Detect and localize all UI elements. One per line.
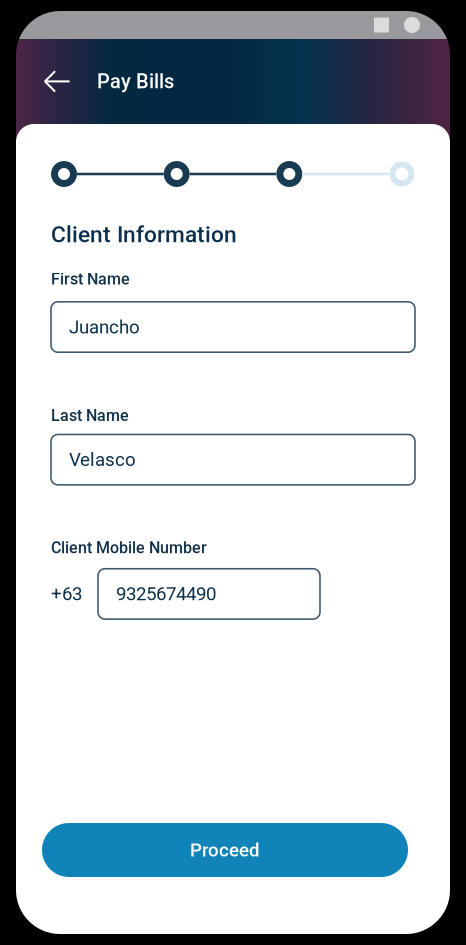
staticText: Proceed [190, 839, 260, 861]
staticText: Client Information [51, 221, 237, 248]
button[interactable]: Back [30, 39, 84, 124]
staticText: Juancho [69, 316, 140, 338]
staticText: Pay Bills [97, 70, 174, 93]
staticText: +63 [51, 583, 82, 605]
button[interactable]: Proceed [42, 823, 408, 877]
staticText: Client Mobile Number [51, 538, 207, 557]
staticText: Velasco [69, 449, 136, 471]
staticText: 9325674490 [116, 583, 216, 605]
staticText: Last Name [51, 406, 129, 425]
staticText: First Name [51, 270, 130, 288]
